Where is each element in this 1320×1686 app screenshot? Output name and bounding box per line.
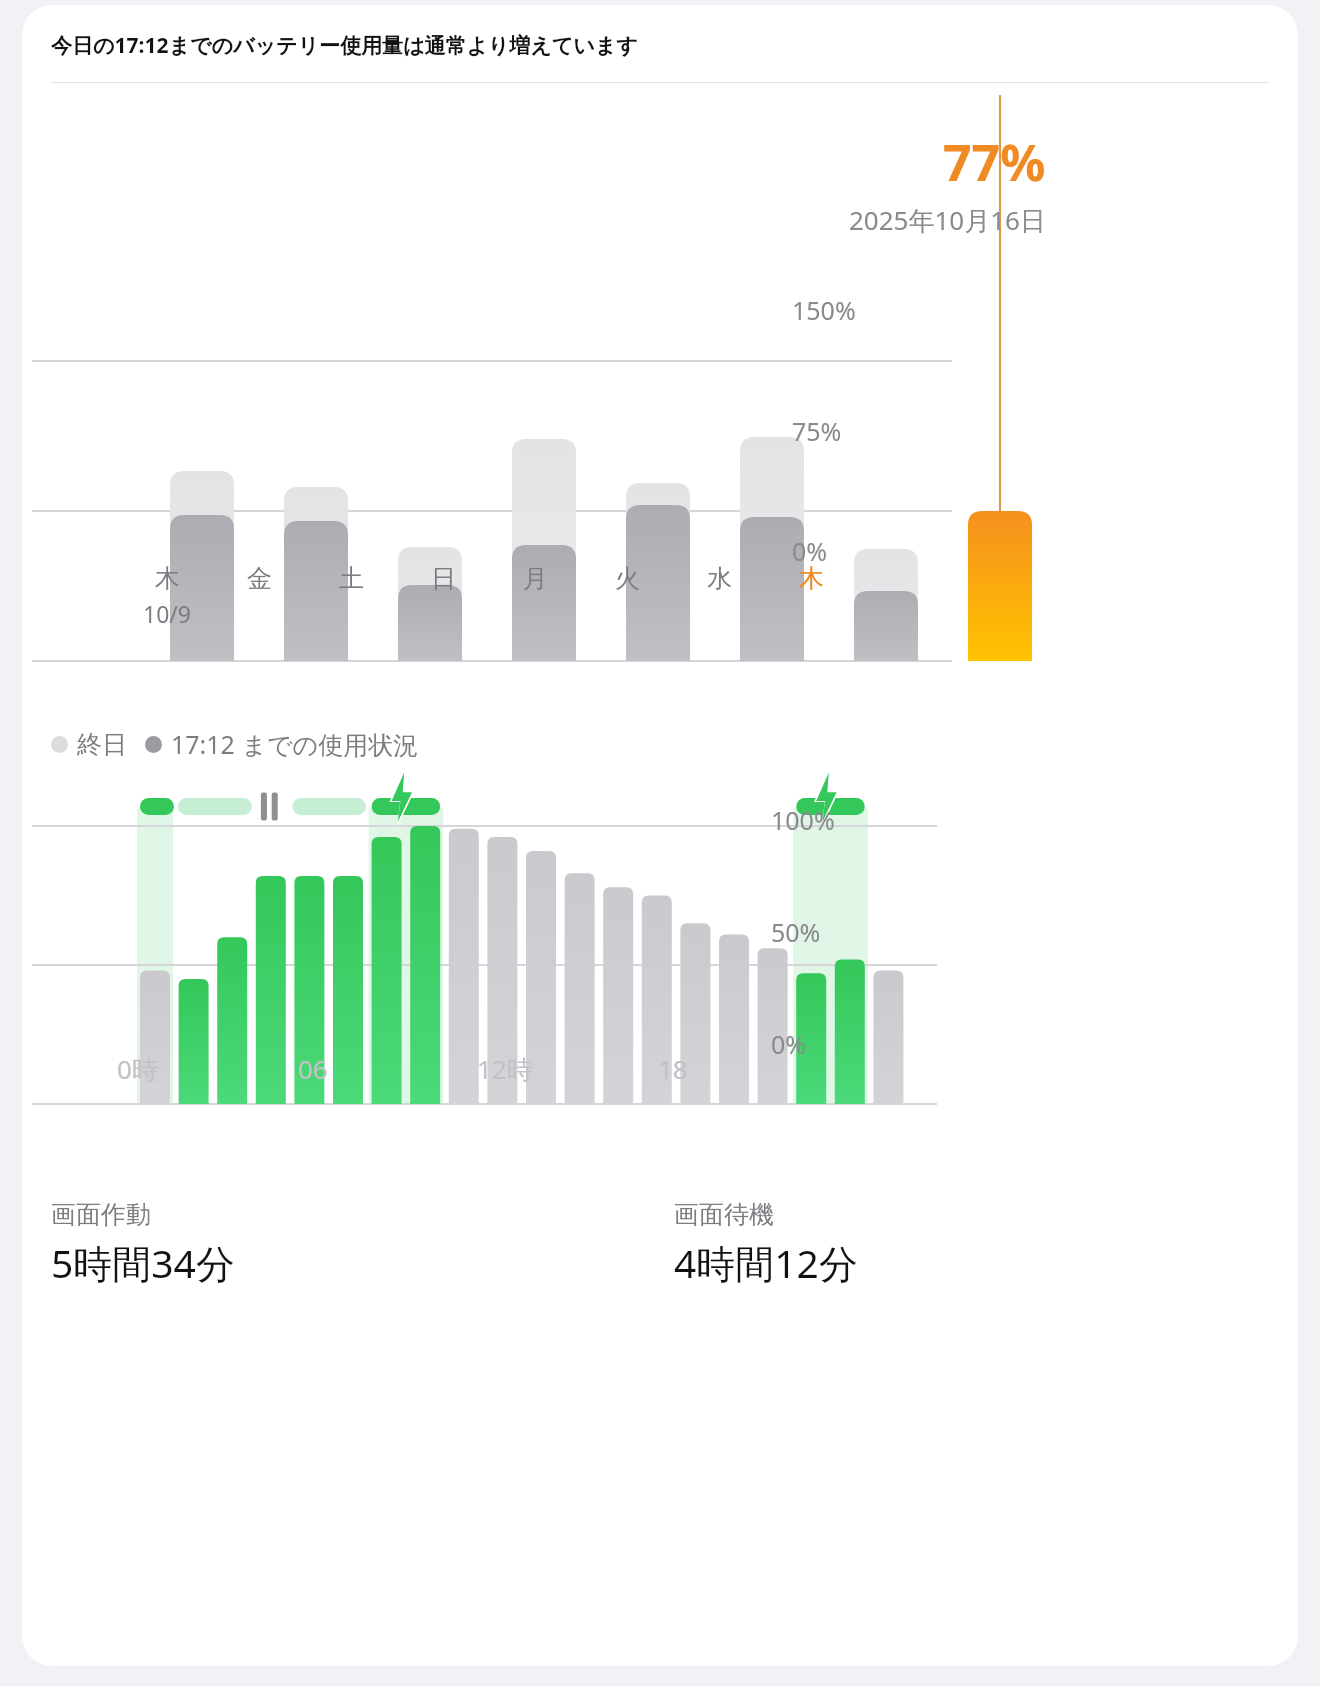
staticText: 150% (792, 293, 856, 327)
button[interactable]: 画面作動 (51, 1199, 674, 1289)
staticText: 18 (658, 1051, 688, 1086)
staticText: 火 (615, 563, 640, 594)
staticText: 77% (943, 128, 1046, 196)
staticText: 金 (247, 563, 272, 594)
staticText: 0% (792, 534, 828, 568)
staticText: 2025年10月16日 (849, 202, 1046, 238)
staticText: 5時間34分 (51, 1236, 235, 1289)
staticText: 10/9 (143, 598, 192, 629)
staticText: 画面作動 (51, 1199, 151, 1230)
staticText: 12時 (477, 1051, 533, 1087)
staticText: 日 (431, 563, 456, 594)
staticText: 75% (792, 414, 842, 448)
staticText: 0% (771, 1027, 807, 1061)
staticText: 06 (298, 1051, 328, 1086)
staticText: 0時 (117, 1051, 158, 1087)
staticText: 画面待機 (674, 1199, 774, 1230)
staticText: 木 (799, 563, 824, 594)
staticText: 終日 (77, 729, 127, 760)
staticText: 月 (523, 563, 548, 594)
staticText: 土 (339, 563, 364, 594)
staticText: 水 (707, 563, 732, 594)
button[interactable]: 画面待機 (674, 1199, 1298, 1289)
staticText: 100% (771, 803, 835, 837)
staticText: 4時間12分 (674, 1236, 858, 1289)
staticText: 木 (155, 563, 180, 594)
staticText: 17:12 までの使用状況 (171, 727, 419, 761)
staticText: 50% (771, 915, 821, 949)
staticText: 今日の17:12までのバッテリー使用量は通常より増えています (51, 31, 638, 60)
button[interactable]: 今日の17:12までのバッテリー使用量は通常より増えています (22, 5, 1298, 1666)
button[interactable]: 終日 (51, 727, 419, 761)
